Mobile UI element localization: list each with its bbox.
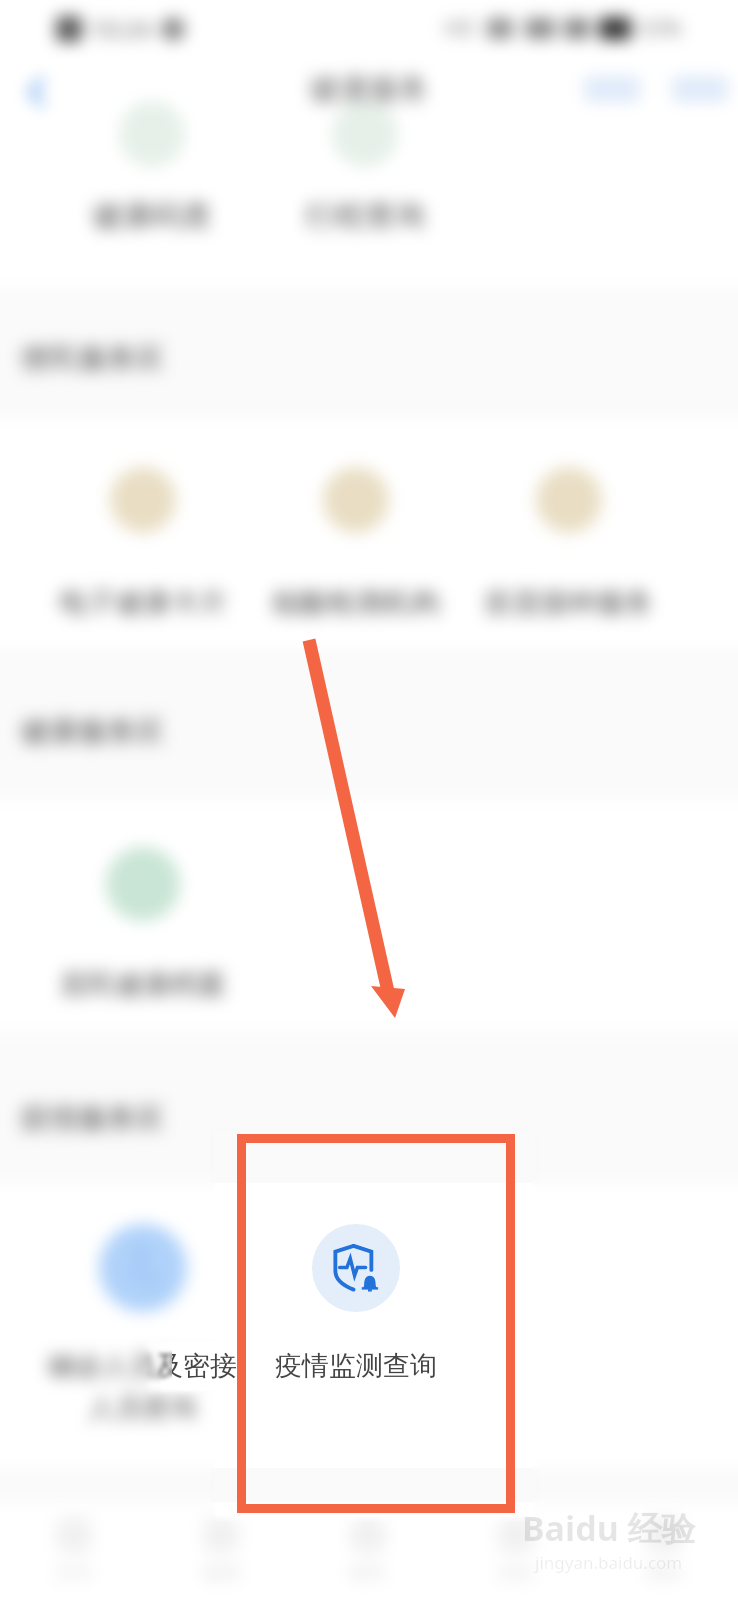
button[interactable]: 服务: [294, 1517, 442, 1585]
staticText: 疫苗接种服务: [485, 585, 653, 620]
button[interactable]: 电子健康卡片: [36, 467, 249, 620]
staticText: 63%: [640, 14, 682, 43]
staticText: 健康服务: [309, 70, 429, 108]
button[interactable]: 首页: [0, 1517, 147, 1585]
button[interactable]: 首页: [0, 1517, 147, 1585]
button[interactable]: 疫情监测查询: [249, 1224, 462, 1383]
staticText: 核酸检测机构: [272, 585, 440, 620]
button[interactable]: 健康码查: [45, 101, 258, 235]
button[interactable]: 疫情监测查询: [249, 1224, 462, 1383]
button[interactable]: More: [672, 76, 728, 102]
button[interactable]: 确诊人员及密接 人员查询: [36, 1224, 249, 1425]
button[interactable]: 消息: [442, 1517, 590, 1585]
button[interactable]: Back: [14, 66, 60, 112]
button[interactable]: 核酸检测机构: [249, 467, 462, 620]
button[interactable]: 居民健康档案: [36, 847, 249, 1002]
staticText: 健康服务区: [20, 713, 165, 750]
staticText: 疫情监测查询: [275, 1349, 437, 1383]
button[interactable]: More: [672, 76, 728, 102]
button[interactable]: 服务: [294, 1517, 442, 1585]
staticText: 10:24: [90, 12, 152, 45]
button[interactable]: 行程查询: [258, 101, 471, 235]
button[interactable]: 居民健康档案: [36, 847, 249, 1002]
button[interactable]: 疫情监测查询: [249, 1224, 462, 1383]
staticText: 行程查询: [305, 197, 425, 235]
button[interactable]: 疫苗接种服务: [462, 467, 675, 620]
button[interactable]: 消息: [442, 1517, 590, 1585]
button[interactable]: 健康: [147, 1517, 294, 1585]
button[interactable]: Search: [584, 76, 640, 102]
staticText: 确诊人员及密接 人员查询: [48, 1349, 237, 1425]
button[interactable]: 确诊人员及密接 人员查询: [36, 1224, 249, 1425]
staticText: 疫苗接种服务: [485, 585, 653, 620]
button[interactable]: 电子健康卡片: [36, 467, 249, 620]
staticText: 居民健康档案: [59, 967, 227, 1002]
button[interactable]: 我的: [590, 1517, 738, 1585]
staticText: 疫情服务区: [20, 1100, 165, 1137]
button[interactable]: Search: [584, 76, 640, 102]
button[interactable]: 健康码查: [45, 101, 258, 235]
button[interactable]: 我的: [590, 1517, 738, 1585]
staticText: 疫苗接种服务: [485, 585, 653, 620]
staticText: 疫情监测查询: [275, 1349, 437, 1383]
staticText: 疫苗接种服务: [485, 585, 653, 620]
button[interactable]: 消息: [442, 1517, 590, 1585]
button[interactable]: 健康: [147, 1517, 294, 1585]
staticText: 健康码查: [92, 197, 212, 235]
staticText: 63%: [640, 14, 682, 43]
button[interactable]: 服务: [294, 1517, 442, 1585]
staticText: 疫情服务区: [20, 1100, 165, 1137]
button[interactable]: 行程查询: [258, 101, 471, 235]
button[interactable]: 电子健康卡片: [36, 467, 249, 620]
button[interactable]: Back: [14, 66, 60, 112]
button[interactable]: 健康: [147, 1517, 294, 1585]
button[interactable]: 服务: [294, 1517, 442, 1585]
button[interactable]: 居民健康档案: [36, 847, 249, 1002]
staticText: 居民健康档案: [59, 967, 227, 1002]
button[interactable]: 我的: [590, 1517, 738, 1585]
button[interactable]: 疫情监测查询: [249, 1224, 462, 1383]
button[interactable]: 首页: [0, 1517, 147, 1585]
button[interactable]: 确诊人员及密接 人员查询: [36, 1224, 249, 1425]
staticText: 便民服务区: [20, 340, 165, 377]
button[interactable]: 消息: [442, 1517, 590, 1585]
button[interactable]: More: [672, 76, 728, 102]
staticText: 行程查询: [305, 197, 425, 235]
staticText: 10:24: [90, 12, 152, 45]
staticText: 我的: [645, 1561, 683, 1585]
button[interactable]: Search: [584, 76, 640, 102]
button[interactable]: 首页: [0, 1517, 147, 1585]
staticText: 行程查询: [305, 197, 425, 235]
button[interactable]: 行程查询: [258, 101, 471, 235]
staticText: 便民服务区: [20, 340, 165, 377]
button[interactable]: 健康码查: [45, 101, 258, 235]
button[interactable]: 确诊人员及密接 人员查询: [36, 1224, 249, 1425]
button[interactable]: 核酸检测机构: [249, 467, 462, 620]
button[interactable]: 核酸检测机构: [249, 467, 462, 620]
button[interactable]: 健康: [147, 1517, 294, 1585]
staticText: 健康服务区: [20, 713, 165, 750]
button[interactable]: 健康码查: [45, 101, 258, 235]
button[interactable]: Back: [14, 66, 60, 112]
button[interactable]: 疫苗接种服务: [462, 467, 675, 620]
staticText: 健康服务区: [20, 713, 165, 750]
button[interactable]: Search: [584, 76, 640, 102]
button[interactable]: 疫苗接种服务: [462, 467, 675, 620]
staticText: HD: [444, 14, 475, 43]
button[interactable]: 核酸检测机构: [249, 467, 462, 620]
button[interactable]: More: [672, 76, 728, 102]
staticText: HD: [444, 14, 475, 43]
button[interactable]: 疫苗接种服务: [462, 467, 675, 620]
button[interactable]: 电子健康卡片: [36, 467, 249, 620]
button[interactable]: 居民健康档案: [36, 847, 249, 1002]
button[interactable]: 我的: [590, 1517, 738, 1585]
button[interactable]: 行程查询: [258, 101, 471, 235]
button[interactable]: Back: [14, 66, 60, 112]
